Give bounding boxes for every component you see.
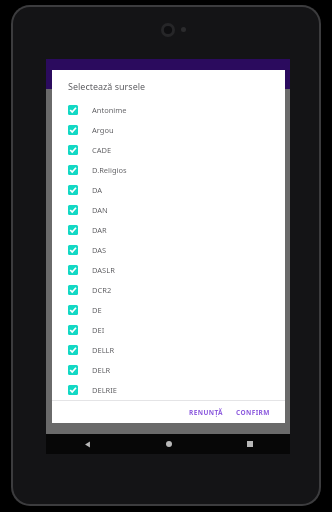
button[interactable]: DE xyxy=(52,300,285,320)
staticText: Selectează sursele xyxy=(68,80,146,92)
button[interactable]: Argou xyxy=(52,120,285,140)
staticText: CADE xyxy=(92,145,112,155)
button[interactable]: Home xyxy=(128,434,209,454)
staticText: DELLR xyxy=(92,345,115,355)
staticText: DAR xyxy=(92,225,107,235)
staticText: DE xyxy=(92,305,102,315)
button[interactable]: DER xyxy=(52,400,285,412)
button[interactable]: RENUNȚĂ xyxy=(184,404,228,421)
button[interactable]: CONFIRM xyxy=(231,404,275,421)
button[interactable]: DELLR xyxy=(52,340,285,360)
button[interactable]: DAS xyxy=(52,240,285,260)
button[interactable]: D.Religios xyxy=(52,160,285,180)
staticText: DAS xyxy=(92,245,107,255)
button[interactable]: CADE xyxy=(52,140,285,160)
staticText: Antonime xyxy=(92,105,127,115)
button[interactable]: Back xyxy=(46,434,128,454)
staticText: RENUNȚĂ xyxy=(189,408,223,417)
staticText: D.Religios xyxy=(92,165,127,175)
button[interactable]: DELRIE xyxy=(52,380,285,400)
button[interactable]: Recent apps xyxy=(209,434,290,454)
button[interactable]: DA xyxy=(52,180,285,200)
button[interactable]: DELR xyxy=(52,360,285,380)
button[interactable]: Antonime xyxy=(52,100,285,120)
staticText: DEI xyxy=(92,325,105,335)
button[interactable]: DEI xyxy=(52,320,285,340)
staticText: CONFIRM xyxy=(236,408,270,417)
staticText: DELRIE xyxy=(92,385,117,395)
button[interactable]: DAN xyxy=(52,200,285,220)
button[interactable]: DAR xyxy=(52,220,285,240)
staticText: DASLR xyxy=(92,265,115,275)
button[interactable]: DCR2 xyxy=(52,280,285,300)
staticText: DA xyxy=(92,185,103,195)
staticText: DCR2 xyxy=(92,285,112,295)
staticText: DELR xyxy=(92,365,111,375)
staticText: DAN xyxy=(92,205,108,215)
staticText: Argou xyxy=(92,125,114,135)
button[interactable]: DASLR xyxy=(52,260,285,280)
